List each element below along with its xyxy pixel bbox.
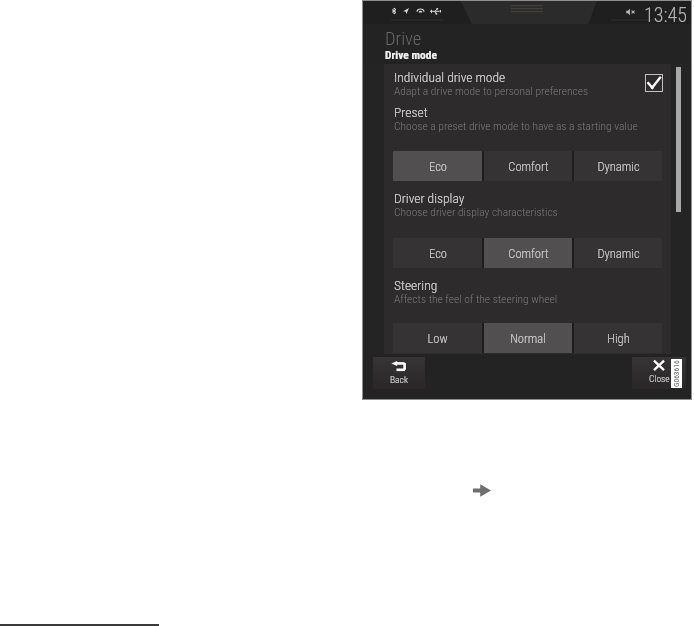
button[interactable]: Comfort (484, 238, 572, 268)
button[interactable]: Close (632, 357, 686, 389)
staticText: Low (427, 331, 448, 346)
staticText: Back (390, 374, 409, 385)
other: Bluetooth (392, 8, 396, 14)
staticText: Normal (510, 331, 546, 346)
button[interactable]: Driver display (363, 190, 691, 220)
button[interactable]: Comfort (484, 151, 572, 181)
staticText: Choose driver display characteristics (394, 205, 558, 218)
staticText: Adapt a drive mode to personal preferenc… (394, 84, 589, 97)
button[interactable]: Back (373, 357, 425, 389)
staticText: Steering (394, 277, 438, 293)
button[interactable]: Low (393, 323, 482, 353)
button[interactable]: Eco (393, 151, 482, 181)
staticText: Drive mode (385, 48, 437, 61)
staticText: Choose a preset drive mode to have as a … (394, 119, 638, 132)
button[interactable]: Steering (363, 277, 691, 307)
other: Wi-Fi (417, 9, 424, 13)
button[interactable]: Individual drive mode (363, 69, 691, 99)
staticText: Drive (385, 28, 422, 50)
button[interactable]: Normal (484, 323, 572, 353)
button[interactable]: Dynamic (574, 238, 662, 268)
staticText: Eco (429, 246, 447, 261)
staticText: Comfort (508, 246, 549, 261)
staticText: G063616 (672, 360, 681, 387)
staticText: Dynamic (597, 246, 640, 261)
staticText: Dynamic (597, 159, 640, 174)
other: Muted (626, 8, 635, 16)
staticText: Driver display (394, 190, 465, 206)
button[interactable]: Eco (393, 238, 482, 268)
button[interactable]: Preset (363, 104, 691, 134)
other: Navigation (403, 8, 409, 14)
staticText: Comfort (508, 159, 549, 174)
staticText: 13:45 (644, 3, 687, 26)
other: USB (430, 8, 441, 14)
staticText: High (607, 331, 630, 346)
staticText: Preset (394, 104, 428, 120)
button[interactable]: Dynamic (574, 151, 662, 181)
staticText: Eco (429, 159, 447, 174)
staticText: Close (649, 373, 670, 384)
button[interactable]: High (574, 323, 662, 353)
staticText: Affects the feel of the steering wheel (394, 292, 558, 305)
staticText: Individual drive mode (394, 69, 506, 85)
